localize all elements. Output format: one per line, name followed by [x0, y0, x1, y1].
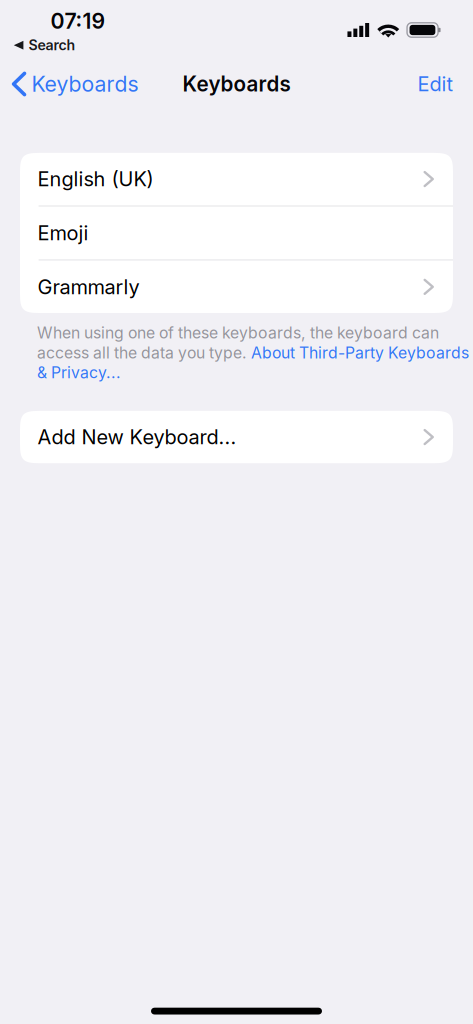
button[interactable]: English (UK) [20, 153, 453, 205]
staticText: When using one of these keyboards, the k… [37, 323, 439, 342]
staticText: access all the data you type. [37, 343, 251, 362]
button[interactable]: Grammarly [20, 261, 453, 313]
button[interactable]: & Privacy... [37, 363, 121, 382]
staticText: Emoji [37, 221, 88, 245]
button[interactable]: Emoji [20, 207, 453, 259]
button[interactable]: About Third-Party Keyboards [251, 343, 469, 362]
staticText: 07:19 [50, 8, 105, 34]
staticText: About Third-Party Keyboards [251, 343, 469, 362]
staticText: Keyboards [32, 71, 139, 97]
staticText: Add New Keyboard... [37, 425, 236, 449]
staticText: Grammarly [37, 275, 139, 299]
button[interactable]: Keyboards [0, 61, 149, 107]
staticText: Search [28, 37, 75, 54]
staticText: Keyboards [182, 71, 290, 96]
staticText: & Privacy... [37, 363, 121, 382]
button[interactable]: Add New Keyboard... [20, 411, 453, 463]
staticText: Edit [417, 72, 453, 96]
staticText: English (UK) [37, 167, 153, 191]
button[interactable]: Search [14, 37, 75, 54]
button[interactable]: Edit [403, 59, 473, 109]
